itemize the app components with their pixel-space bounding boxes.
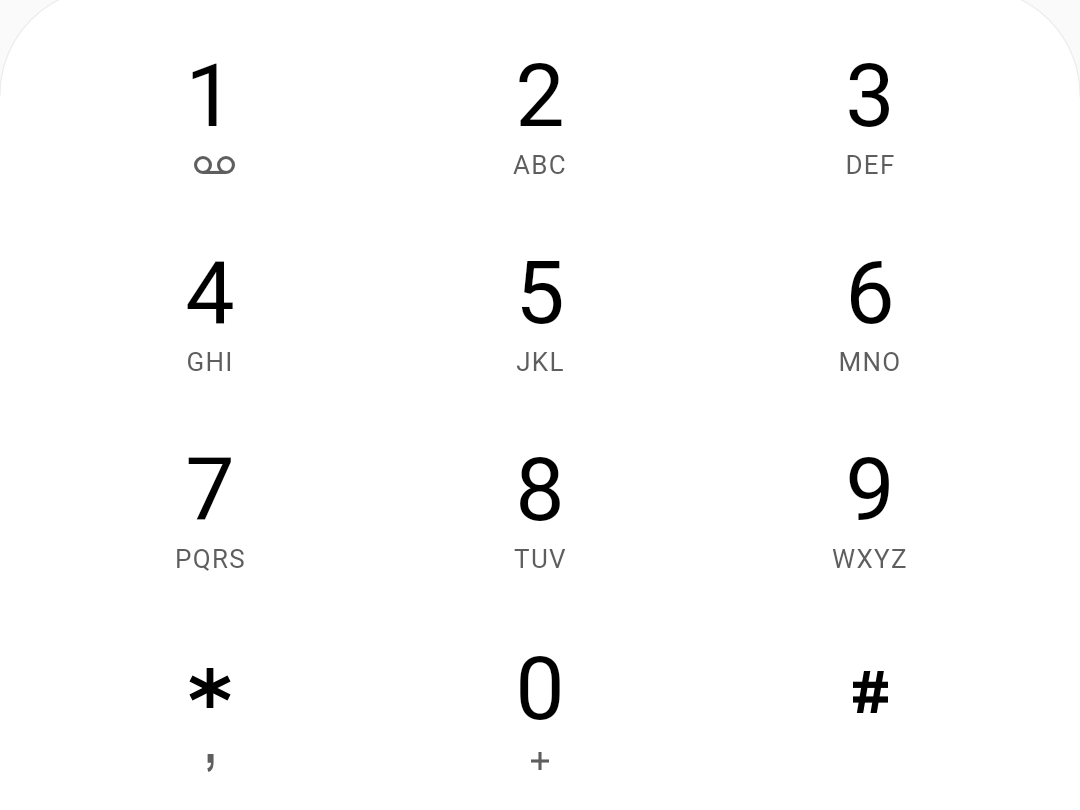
button[interactable]: 9 WXYZ	[705, 404, 1035, 607]
staticText: WXYZ	[832, 544, 908, 574]
staticText: TUV	[514, 544, 567, 574]
button[interactable]: 6 MNO	[705, 202, 1035, 404]
staticText: 4	[185, 241, 235, 344]
button[interactable]: 7 PQRS	[45, 404, 375, 607]
staticText: 8	[515, 438, 565, 541]
staticText: PQRS	[175, 544, 246, 574]
staticText: MNO	[838, 347, 902, 377]
button[interactable]: 2 ABC	[375, 0, 705, 202]
staticText: 9	[845, 438, 895, 541]
button[interactable]: 5 JKL	[375, 202, 705, 404]
staticText: 6	[845, 241, 895, 344]
button[interactable]: 0 plus	[375, 607, 705, 810]
staticText: 0	[515, 637, 565, 740]
staticText: 2	[515, 44, 565, 147]
staticText: 5	[515, 241, 565, 344]
button[interactable]: Pound	[705, 607, 1035, 810]
button[interactable]: 4 GHI	[45, 202, 375, 404]
staticText: JKL	[516, 347, 565, 377]
staticText: ABC	[513, 150, 567, 180]
button[interactable]: Star	[45, 607, 375, 810]
staticText: 1	[185, 44, 235, 147]
staticText: 3	[845, 44, 895, 147]
staticText: GHI	[186, 347, 234, 377]
staticText: DEF	[845, 150, 896, 180]
button[interactable]: 1 voicemail	[45, 0, 375, 202]
button[interactable]: 3 DEF	[705, 0, 1035, 202]
button[interactable]: 8 TUV	[375, 404, 705, 607]
staticText: 7	[185, 438, 235, 541]
